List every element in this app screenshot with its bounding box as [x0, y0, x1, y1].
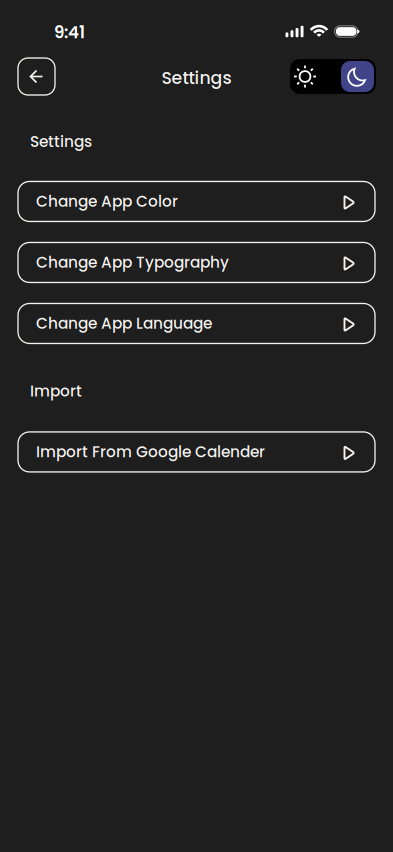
button[interactable]: Change App Color: [18, 181, 375, 221]
staticText: Change App Language: [36, 313, 212, 334]
staticText: Import: [30, 380, 82, 402]
staticText: Import From Google Calender: [36, 441, 265, 463]
staticText: Change App Typography: [36, 252, 229, 273]
staticText: Change App Color: [36, 191, 178, 212]
staticText: Settings: [30, 131, 92, 152]
button[interactable]: Change App Language: [18, 303, 375, 343]
button[interactable]: Import From Google Calender: [18, 432, 375, 472]
staticText: Settings: [161, 66, 231, 90]
button[interactable]: Toggle appearance: [290, 59, 376, 94]
button[interactable]: Change App Typography: [18, 242, 375, 282]
staticText: 9:41: [54, 21, 85, 44]
button[interactable]: Back: [18, 58, 55, 95]
